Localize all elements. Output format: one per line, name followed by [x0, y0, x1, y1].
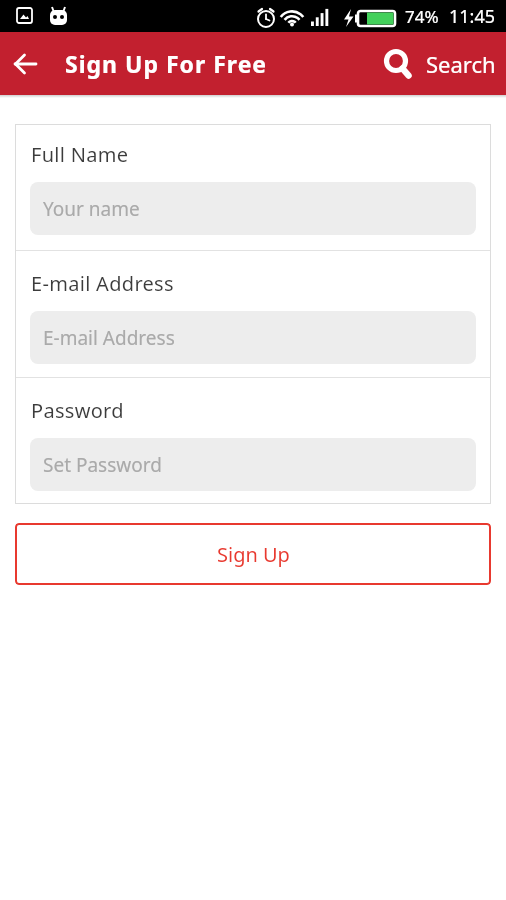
button[interactable]: Set Password — [30, 438, 476, 491]
staticText: E-mail Address — [43, 325, 175, 351]
button[interactable]: Your name — [30, 182, 476, 235]
staticText: Full Name — [31, 141, 129, 168]
button[interactable]: Sign Up — [15, 523, 491, 585]
staticText: E-mail Address — [31, 270, 174, 297]
staticText: Sign Up — [217, 541, 290, 568]
staticText: Search — [426, 49, 496, 79]
staticText: Set Password — [43, 452, 162, 478]
staticText: Your name — [43, 196, 140, 222]
staticText: Password — [31, 397, 124, 424]
staticText: 11:45 — [449, 4, 496, 29]
staticText: Sign Up For Free — [65, 48, 268, 79]
button[interactable] — [6, 44, 46, 84]
button[interactable]: E-mail Address — [30, 311, 476, 364]
staticText: 74% — [405, 5, 439, 28]
button[interactable]: Search — [383, 49, 496, 79]
